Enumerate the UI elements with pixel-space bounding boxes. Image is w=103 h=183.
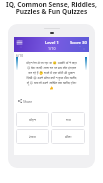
button[interactable]: Menu xyxy=(16,39,23,46)
button[interactable]: सीता xyxy=(51,129,85,144)
staticText: Level 1 xyxy=(45,40,59,46)
button[interactable]: मोहन xyxy=(16,112,49,127)
staticText: मोहन xyxy=(29,117,36,122)
staticText: राम xyxy=(66,117,71,122)
staticText: श्याम xyxy=(29,134,36,139)
staticText: सीता xyxy=(65,134,72,139)
staticText: 6/10 xyxy=(16,53,24,58)
button[interactable]: Share xyxy=(18,98,33,104)
staticText: IQ, Common Sense, Riddles, Puzzles & Fun… xyxy=(0,0,103,16)
button[interactable]: श्याम xyxy=(16,129,49,144)
staticText: Share xyxy=(23,99,33,104)
staticText: मोहन रेल से जा रहा था 🙂 उसकी माँ ने कहा … xyxy=(26,61,77,90)
button[interactable]: राम xyxy=(51,112,85,127)
staticText: Score 30 xyxy=(70,40,87,46)
staticText: 1/10 xyxy=(48,46,56,51)
